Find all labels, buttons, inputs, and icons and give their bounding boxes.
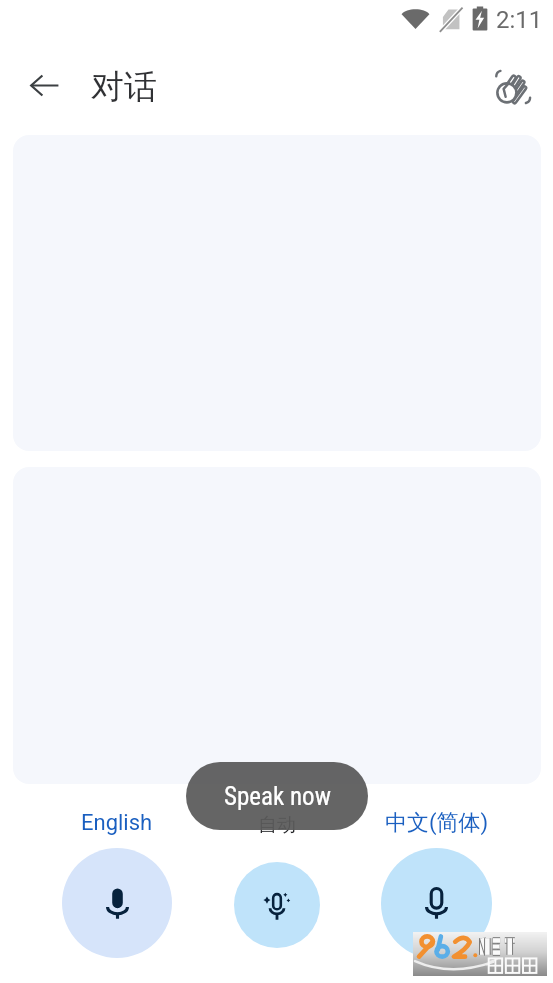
button[interactable]: Speak English	[62, 848, 172, 958]
staticText: Speak now	[224, 782, 331, 811]
staticText: English	[81, 810, 153, 836]
staticText: 对话	[91, 66, 157, 108]
staticText: 2:11	[496, 6, 543, 34]
button[interactable]: Phrasebook	[489, 62, 537, 110]
button[interactable]: Auto detect language	[234, 862, 320, 948]
button[interactable]: 中文(简体)	[381, 806, 492, 840]
button[interactable]: 对话	[91, 66, 163, 108]
staticText: 中文(简体)	[385, 809, 489, 837]
button[interactable]: Speak Chinese	[381, 848, 492, 959]
button[interactable]: 自动	[234, 812, 320, 838]
button[interactable]	[13, 467, 541, 784]
staticText: 自动	[258, 813, 296, 837]
button[interactable]: English	[62, 806, 172, 840]
button[interactable]: Back	[20, 61, 68, 109]
